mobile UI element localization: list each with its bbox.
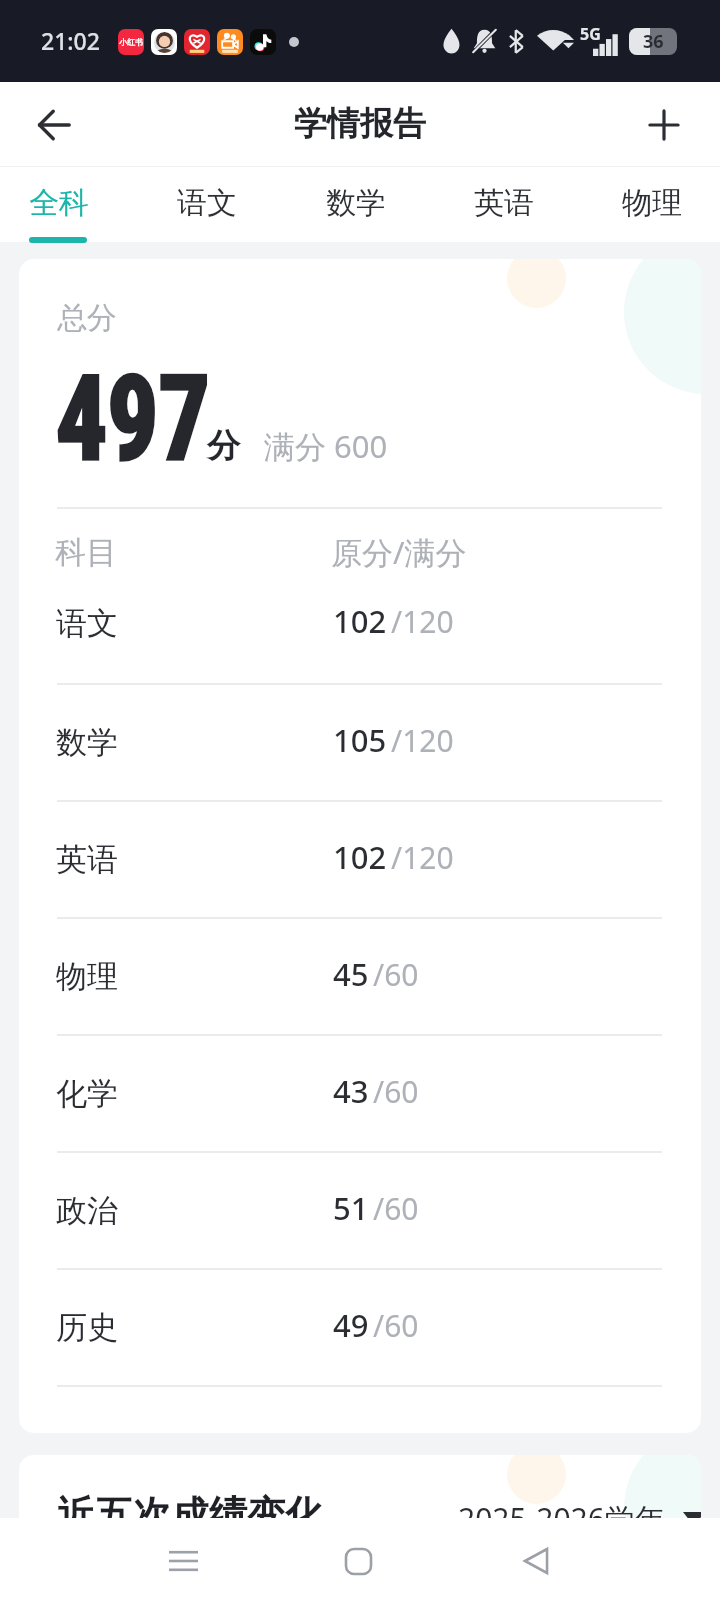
staticText: 102 — [333, 836, 387, 878]
staticText: 学情报告 — [294, 103, 426, 145]
staticText: 102 — [333, 600, 387, 642]
button[interactable]: Back — [16, 87, 92, 163]
staticText: 总分 — [57, 299, 117, 337]
staticText: /120 — [391, 601, 454, 642]
staticText: 2025-2026学年 — [458, 1498, 665, 1539]
button[interactable]: Back — [498, 1523, 574, 1599]
staticText: /60 — [373, 1305, 419, 1346]
button[interactable]: 历史 — [19, 1270, 701, 1385]
button[interactable]: 语文 — [147, 167, 265, 242]
staticText: /120 — [391, 837, 454, 878]
staticText: 历史 — [56, 1308, 118, 1347]
staticText: 51 — [333, 1187, 369, 1229]
staticText: /60 — [373, 1188, 419, 1229]
staticText: 数学 — [326, 184, 386, 222]
button[interactable]: 物理 — [19, 919, 701, 1034]
staticText: 原分/满分 — [331, 531, 467, 573]
button[interactable]: Recent apps — [145, 1523, 221, 1599]
staticText: 49 — [333, 1304, 369, 1346]
staticText: 满分 600 — [264, 425, 388, 467]
staticText: 36 — [643, 29, 664, 54]
button[interactable]: Home — [320, 1523, 396, 1599]
staticText: /60 — [373, 1071, 419, 1112]
staticText: 43 — [333, 1070, 369, 1112]
button[interactable]: 数学 — [296, 167, 414, 242]
staticText: 分 — [207, 425, 240, 467]
button[interactable]: Add — [626, 87, 702, 163]
staticText: 105 — [333, 719, 387, 761]
button[interactable]: 全科 — [0, 167, 117, 242]
staticText: 497 — [56, 350, 210, 487]
staticText: 小红书 — [119, 37, 143, 47]
staticText: 语文 — [56, 604, 118, 643]
staticText: 英语 — [474, 184, 534, 222]
button[interactable]: 2025-2026学年 — [458, 1498, 701, 1539]
button[interactable]: 数学 — [19, 685, 701, 800]
button[interactable]: 政治 — [19, 1153, 701, 1268]
staticText: 科目 — [55, 533, 117, 572]
staticText: 英语 — [56, 840, 118, 879]
staticText: 近五次成绩变化 — [57, 1491, 323, 1539]
staticText: 45 — [333, 953, 369, 995]
staticText: 物理 — [622, 184, 682, 222]
button[interactable]: 化学 — [19, 1036, 701, 1151]
button[interactable]: 物理 — [592, 167, 710, 242]
staticText: /120 — [391, 720, 454, 761]
staticText: 5G — [580, 23, 601, 45]
button[interactable]: 英语 — [444, 167, 562, 242]
staticText: 化学 — [56, 1074, 118, 1113]
staticText: 数学 — [56, 723, 118, 762]
staticText: 政治 — [56, 1191, 118, 1230]
staticText: 物理 — [56, 957, 118, 996]
button[interactable]: 英语 — [19, 802, 701, 917]
staticText: 全科 — [29, 184, 89, 222]
staticText: /60 — [373, 954, 419, 995]
staticText: 21:02 — [41, 25, 100, 56]
staticText: 语文 — [177, 184, 237, 222]
